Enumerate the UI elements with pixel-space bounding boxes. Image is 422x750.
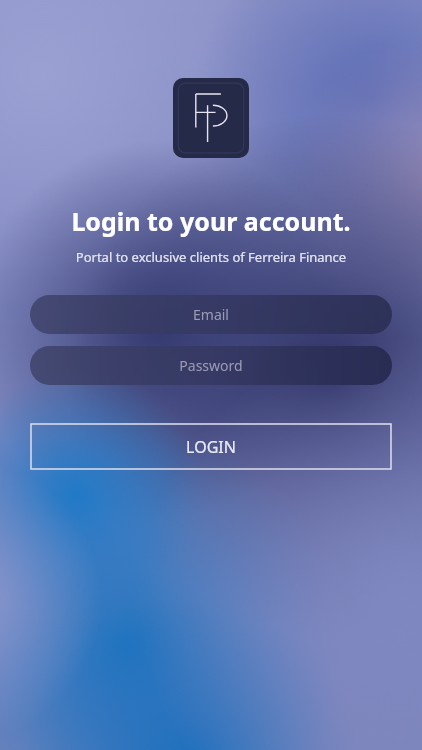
staticText: Password [179,356,243,375]
button[interactable]: Password [30,346,392,385]
button[interactable]: Email [30,295,392,334]
staticText: Email [193,305,229,324]
other: Ferreira Finance logo [173,78,249,158]
button[interactable]: LOGIN [31,424,391,469]
staticText: Login to your account. [0,204,422,238]
staticText: LOGIN [186,436,236,458]
staticText: Portal to exclusive clients of Ferreira … [0,248,422,266]
